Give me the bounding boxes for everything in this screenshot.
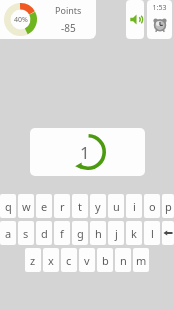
button[interactable]: Alarm 1:53 (147, 0, 172, 39)
staticText: p (165, 199, 172, 214)
staticText: q (5, 199, 12, 214)
staticText: 40% (14, 15, 28, 25)
button[interactable]: u (108, 194, 124, 218)
button[interactable]: g (72, 221, 88, 245)
button[interactable]: c (61, 248, 77, 272)
staticText: x (48, 253, 54, 268)
staticText: a (5, 226, 12, 241)
button[interactable]: Progress 40 percent (0, 0, 96, 39)
button[interactable]: o (144, 194, 160, 218)
button[interactable]: p (162, 194, 174, 218)
other: Progress 40 percent (4, 3, 37, 36)
button[interactable]: s (18, 221, 34, 245)
staticText: v (84, 253, 90, 268)
button[interactable]: f (54, 221, 70, 245)
staticText: o (149, 199, 156, 214)
button[interactable]: m (133, 248, 149, 272)
staticText: 1 (80, 141, 90, 164)
button[interactable]: 1 (30, 128, 145, 176)
button[interactable]: q (0, 194, 16, 218)
button[interactable]: k (126, 221, 142, 245)
button[interactable]: Backspace (162, 221, 174, 245)
button[interactable]: i (126, 194, 142, 218)
staticText: s (23, 226, 29, 241)
button[interactable]: n (115, 248, 131, 272)
staticText: t (78, 199, 82, 214)
staticText: z (30, 253, 36, 268)
staticText: n (120, 253, 127, 268)
button[interactable]: v (79, 248, 95, 272)
button[interactable]: l (144, 221, 160, 245)
button[interactable]: d (36, 221, 52, 245)
button[interactable]: a (0, 221, 16, 245)
staticText: Points (55, 4, 82, 16)
staticText: i (133, 199, 136, 214)
staticText: 1:53 (147, 3, 172, 13)
staticText: b (102, 253, 109, 268)
staticText: -85 (61, 21, 76, 35)
button[interactable]: w (18, 194, 34, 218)
button[interactable]: y (90, 194, 106, 218)
staticText: d (41, 226, 48, 241)
button[interactable]: r (54, 194, 70, 218)
button[interactable]: e (36, 194, 52, 218)
staticText: u (113, 199, 120, 214)
staticText: h (95, 226, 102, 241)
staticText: j (115, 226, 118, 241)
staticText: k (131, 226, 137, 241)
button[interactable]: h (90, 221, 106, 245)
staticText: l (151, 226, 154, 241)
button[interactable]: x (43, 248, 59, 272)
button[interactable]: z (25, 248, 41, 272)
button[interactable]: t (72, 194, 88, 218)
button[interactable]: j (108, 221, 124, 245)
staticText: r (60, 199, 65, 214)
staticText: f (60, 226, 64, 241)
button[interactable]: b (97, 248, 113, 272)
staticText: w (22, 199, 31, 214)
staticText: c (66, 253, 72, 268)
staticText: m (136, 253, 147, 268)
staticText: y (95, 199, 101, 214)
button[interactable]: Sound on (126, 0, 144, 39)
staticText: e (41, 199, 48, 214)
staticText: g (77, 226, 84, 241)
